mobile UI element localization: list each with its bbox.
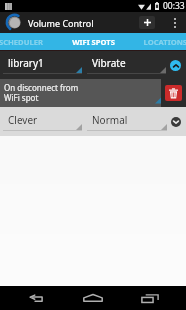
button[interactable]: library1 [3, 54, 82, 76]
button[interactable]: Recents [130, 286, 170, 310]
button[interactable]: Home [73, 286, 113, 310]
button[interactable]: LOCATIONS [134, 33, 186, 50]
staticText: Clever [8, 113, 38, 127]
button[interactable]: Add [139, 16, 155, 29]
staticText: 00:33 [163, 0, 185, 12]
button[interactable]: Normal [87, 111, 167, 133]
button[interactable]: SCHEDULER [0, 33, 52, 50]
button[interactable]: Expand [171, 117, 181, 127]
button[interactable]: Back [17, 286, 57, 310]
button[interactable]: More options [169, 14, 180, 32]
staticText: Vibrate [92, 56, 126, 70]
staticText: Volume Control [28, 17, 94, 29]
staticText: LOCATIONS [143, 37, 186, 47]
button[interactable]: Delete [165, 85, 182, 101]
staticText: Normal [92, 113, 128, 127]
staticText: library1 [8, 56, 44, 70]
staticText: On disconnect from WiFi spot [4, 82, 79, 103]
staticText: SCHEDULER [0, 37, 43, 47]
button[interactable]: On disconnect from WiFi spot [0, 79, 161, 107]
button[interactable]: WIFI SPOTS [63, 33, 123, 50]
staticText: WIFI SPOTS [72, 37, 115, 47]
button[interactable]: Vibrate [87, 54, 166, 76]
button[interactable]: Collapse [170, 60, 181, 71]
button[interactable]: Clever [3, 111, 82, 133]
